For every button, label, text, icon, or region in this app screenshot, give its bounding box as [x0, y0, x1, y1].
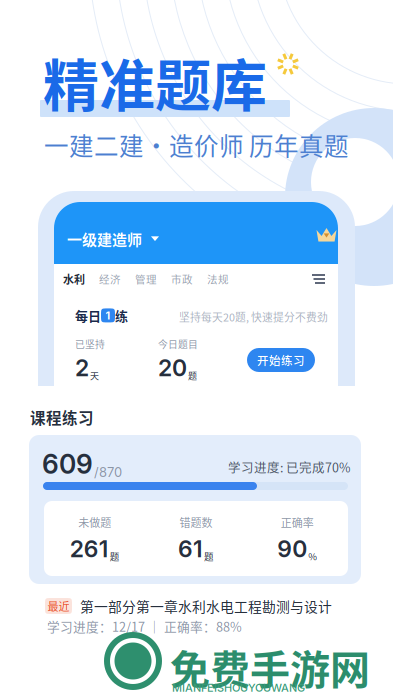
button[interactable]: 法规	[207, 271, 229, 287]
staticText: 题	[110, 549, 120, 563]
staticText: 20	[158, 354, 187, 382]
staticText: 课程练习	[30, 406, 94, 428]
staticText: 学习进度：12/17 ｜ 正确率：88%	[47, 617, 242, 635]
button[interactable]: 筛选	[312, 274, 326, 284]
button[interactable]: 水利	[63, 271, 85, 287]
button[interactable]: 会员	[316, 227, 337, 243]
staticText: 错题数	[179, 514, 212, 530]
staticText: 未做题	[78, 514, 111, 530]
staticText: 已坚持	[75, 337, 105, 351]
staticText: 开始练习	[257, 352, 305, 368]
staticText: 学习进度: 已完成70%	[228, 458, 351, 476]
staticText: 精准题库	[43, 41, 267, 122]
staticText: 经济	[99, 271, 121, 287]
staticText: 免费手游网	[170, 638, 370, 696]
staticText: 水利	[63, 271, 85, 287]
staticText: 609	[42, 448, 93, 480]
staticText: 第一部分第一章水利水电工程勘测与设计	[80, 596, 332, 616]
button[interactable]: 管理	[135, 271, 157, 287]
staticText: 题	[204, 549, 214, 563]
staticText: 一建二建•造价师 历年真题	[44, 127, 349, 162]
staticText: 261	[70, 535, 109, 563]
button[interactable]: 最近	[45, 596, 377, 616]
staticText: 题	[188, 369, 197, 382]
staticText: 坚持每天20题, 快速提分不费劲	[179, 309, 328, 325]
staticText: %	[308, 549, 317, 563]
staticText: 1	[105, 309, 110, 322]
staticText: 市政	[171, 271, 193, 287]
staticText: 正确率	[281, 514, 314, 530]
staticText: 2	[75, 354, 89, 382]
staticText: 最近	[47, 598, 69, 614]
staticText: 今日题目	[158, 337, 198, 351]
staticText: 练	[115, 306, 128, 325]
button[interactable]: 市政	[171, 271, 193, 287]
staticText: 法规	[207, 271, 229, 287]
staticText: 每日	[75, 306, 101, 325]
staticText: 天	[90, 369, 99, 382]
staticText: 一级建造师	[67, 228, 142, 250]
staticText: 90	[277, 535, 307, 563]
staticText: 管理	[135, 271, 157, 287]
staticText: 61	[178, 535, 203, 563]
button[interactable]: 开始练习	[247, 348, 315, 372]
button[interactable]: 经济	[99, 271, 121, 287]
staticText: MIANFEISHOUYOUWANG	[172, 681, 305, 694]
staticText: /870	[94, 464, 122, 480]
button[interactable]: 一级建造师	[67, 228, 159, 250]
